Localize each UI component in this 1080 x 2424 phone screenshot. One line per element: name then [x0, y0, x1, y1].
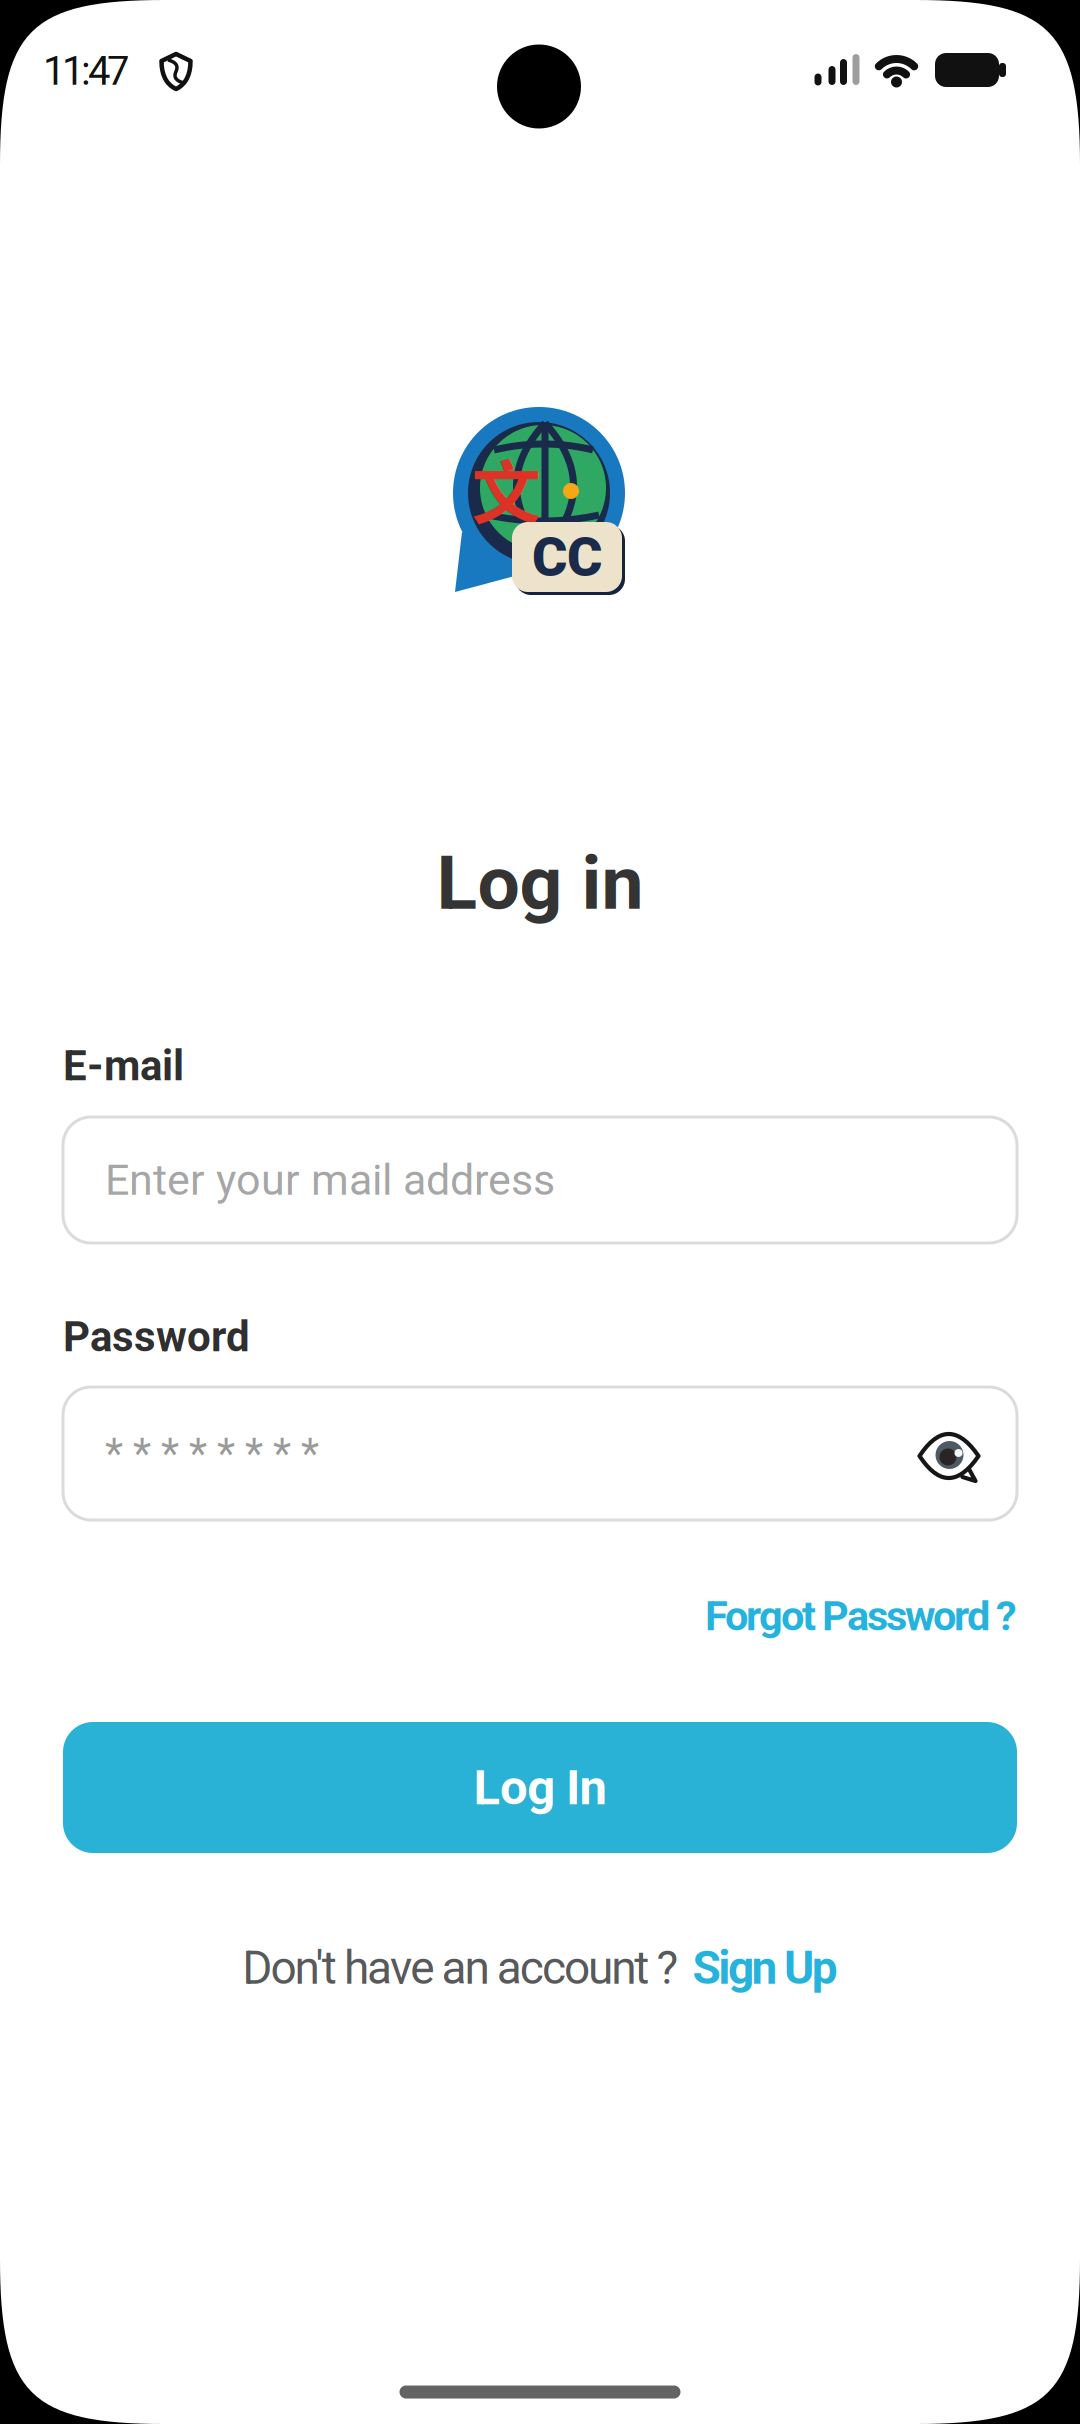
button[interactable]: Log In	[63, 1722, 1017, 1853]
staticText: CC	[532, 525, 602, 589]
staticText: Password	[63, 1312, 250, 1362]
staticText: Forgot Password ?	[705, 1592, 1017, 1640]
staticText: Log in	[436, 839, 643, 927]
staticText: Log In	[473, 1759, 606, 1816]
button[interactable]: Show password	[912, 1421, 984, 1493]
button[interactable]: Enter your mail address	[63, 1117, 1017, 1243]
staticText: 11:47	[43, 48, 129, 94]
staticText: E-mail	[63, 1041, 184, 1091]
staticText: Don't have an account ?	[242, 1941, 678, 1995]
staticText: 文	[471, 438, 540, 538]
button[interactable]: * * * * * * * *	[63, 1387, 1017, 1520]
button[interactable]: Forgot Password ?	[705, 1592, 1017, 1640]
staticText: Sign Up	[692, 1941, 838, 1995]
staticText: Enter your mail address	[105, 1155, 555, 1205]
staticText: * * * * * * * *	[105, 1429, 319, 1478]
button[interactable]: Sign Up	[692, 1941, 838, 1995]
